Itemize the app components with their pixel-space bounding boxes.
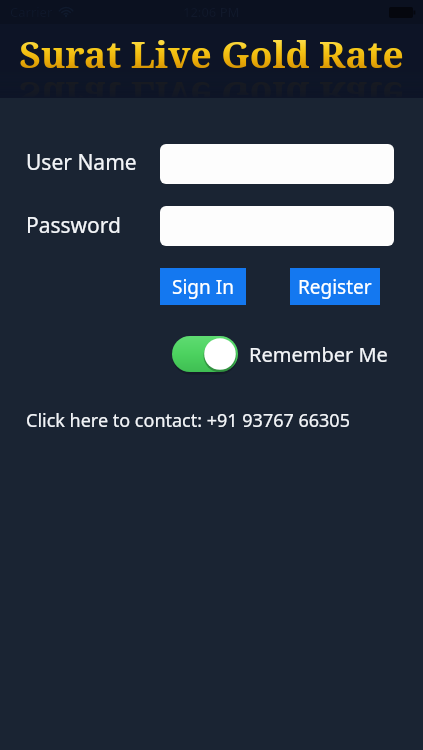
staticText: Register xyxy=(298,274,372,300)
button[interactable]: Sign In xyxy=(160,268,246,305)
staticText: Remember Me xyxy=(249,341,388,368)
button[interactable]: Click here to contact: +91 93767 66305 xyxy=(26,408,350,433)
button[interactable]: Remember Me toggle, on xyxy=(172,336,388,372)
button[interactable] xyxy=(160,144,394,184)
staticText: User Name xyxy=(26,148,137,177)
staticText: Sign In xyxy=(172,274,234,300)
staticText: Surat Live Gold Rate xyxy=(19,72,404,122)
button[interactable]: Register xyxy=(290,268,380,305)
staticText: Password xyxy=(26,211,121,240)
button[interactable]: Remember Me toggle, on xyxy=(172,336,238,372)
button[interactable] xyxy=(160,206,394,246)
staticText: Surat Live Gold Rate xyxy=(19,28,404,78)
